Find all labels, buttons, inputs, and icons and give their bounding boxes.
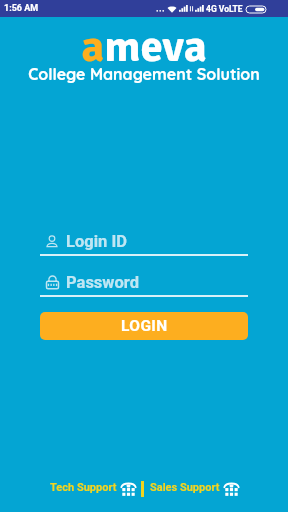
button[interactable]: Tech Support	[50, 480, 136, 498]
staticText: ameva	[0, 19, 288, 74]
staticText: LOGIN	[121, 317, 168, 335]
button[interactable]: Sales Support	[150, 480, 239, 498]
button[interactable]: Login ID	[40, 228, 248, 254]
staticText: Tech Support	[50, 481, 117, 494]
staticText: Login ID	[66, 232, 127, 251]
button[interactable]: LOGIN	[40, 312, 248, 340]
button[interactable]: Password	[40, 269, 248, 295]
staticText: Password	[66, 273, 139, 292]
staticText: 1:56 AM	[4, 3, 39, 14]
staticText: College Management Solution	[0, 64, 288, 84]
staticText: Sales Support	[150, 481, 220, 494]
staticText: 4G VoLTE	[206, 4, 243, 14]
other: Call sales support	[224, 482, 239, 496]
other: Call tech support	[121, 482, 136, 496]
